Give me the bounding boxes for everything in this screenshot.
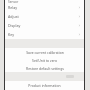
staticText: Save current calibration xyxy=(26,50,64,55)
staticText: Set/Unit to zero xyxy=(32,58,57,63)
staticText: Relay xyxy=(8,5,18,10)
staticText: Product information xyxy=(28,83,61,88)
button[interactable]: Restore default settings xyxy=(5,64,84,72)
staticText: Restore default settings xyxy=(26,66,64,71)
button[interactable]: Product information xyxy=(5,81,84,89)
button[interactable]: Key xyxy=(5,30,84,39)
staticText: Key xyxy=(8,32,15,37)
button[interactable]: Save current calibration xyxy=(5,48,84,56)
button[interactable]: Adjust xyxy=(5,12,84,21)
button[interactable]: Set/Unit to zero xyxy=(5,56,84,64)
button[interactable]: Relay xyxy=(5,3,84,12)
button[interactable]: Sensor xyxy=(5,0,84,3)
staticText: Sensor xyxy=(8,0,19,3)
staticText: Adjust xyxy=(8,14,19,19)
button[interactable]: Display xyxy=(5,21,84,30)
staticText: Display xyxy=(8,23,21,28)
